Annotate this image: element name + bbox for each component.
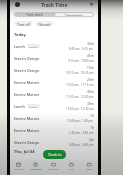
staticText: Messages <box>48 168 59 171</box>
staticText: 12:00 pm - 12:30 pm <box>66 107 94 111</box>
button[interactable]: Steve's Design <box>10 52 98 64</box>
staticText: Encino Motors <box>14 128 40 133</box>
button[interactable]: Lunch <box>10 40 98 52</box>
staticText: Encino Motors <box>14 116 40 121</box>
staticText: 45m <box>87 54 94 58</box>
staticText: Steve's Design <box>14 68 40 73</box>
staticText: 2m <box>89 138 94 142</box>
staticText: 12:40 pm - 1:40 pm <box>67 119 94 123</box>
button[interactable]: Lunch <box>10 100 98 112</box>
button[interactable]: Time clock <box>14 12 54 17</box>
staticText: 1:45 pm - 2:45 pm <box>69 131 94 135</box>
button[interactable]: Filter <box>89 2 94 7</box>
staticText: Time off <box>17 22 30 26</box>
staticText: 3:00 pm - 3:45 pm <box>69 143 94 147</box>
staticText: Steve's Design <box>14 56 40 61</box>
button[interactable]: Timesheets <box>55 13 93 16</box>
staticText: unpaid <box>29 45 38 48</box>
staticText: Encino Motors <box>14 92 40 97</box>
staticText: Lunch <box>14 104 25 109</box>
staticText: Jobs <box>69 168 74 171</box>
staticText: Time clock <box>26 12 43 17</box>
button[interactable]: Flagged <box>35 21 54 26</box>
button[interactable]: Jobs <box>62 159 80 175</box>
staticText: Flagged <box>38 22 51 26</box>
staticText: 1h <box>90 114 94 118</box>
staticText: Track Time <box>41 2 68 9</box>
button[interactable]: Encino Motors <box>10 124 98 136</box>
staticText: 30m <box>87 90 94 94</box>
staticText: 1h <box>90 126 94 130</box>
staticText: unpaid <box>29 105 38 108</box>
staticText: 30m <box>87 42 94 46</box>
staticText: Lunch <box>14 44 25 49</box>
staticText: 8:45 am - 9:15 am <box>69 47 94 51</box>
staticText: Track Time <box>30 168 42 171</box>
button[interactable]: Steve's Design <box>10 64 98 76</box>
staticText: Timesheets <box>65 13 84 16</box>
button[interactable]: Schedule <box>10 159 27 175</box>
staticText: Thu, Jul 04 <box>14 149 35 154</box>
staticText: 9:15 am - 10:00 am <box>68 59 94 63</box>
staticText: Clock in <box>48 152 62 157</box>
button[interactable]: Track Time <box>27 159 44 175</box>
staticText: 15m <box>87 66 94 70</box>
staticText: Today <box>14 32 26 37</box>
staticText: Schedule <box>14 168 24 171</box>
staticText: More <box>86 168 92 171</box>
button[interactable]: Encino Motors <box>10 88 98 100</box>
button[interactable]: Time off <box>14 21 33 26</box>
button[interactable]: Profile <box>15 2 20 7</box>
staticText: Encino Motors <box>14 80 40 85</box>
staticText: 11:30 am - 12:00 pm <box>66 95 94 99</box>
staticText: 10:30 am - 11:15 am <box>66 83 94 87</box>
button[interactable]: Encino Motors <box>10 76 98 88</box>
button[interactable]: Steve's Design <box>10 136 98 148</box>
button[interactable]: More <box>80 159 98 175</box>
staticText: 30m <box>87 102 94 106</box>
staticText: 10:10 am - 10:25 am <box>66 71 94 75</box>
button[interactable]: Clock in <box>43 150 66 159</box>
staticText: 20m <box>87 78 94 82</box>
staticText: Steve's Design <box>14 140 40 145</box>
button[interactable]: Encino Motors <box>10 112 98 124</box>
button[interactable]: Messages <box>44 159 62 175</box>
